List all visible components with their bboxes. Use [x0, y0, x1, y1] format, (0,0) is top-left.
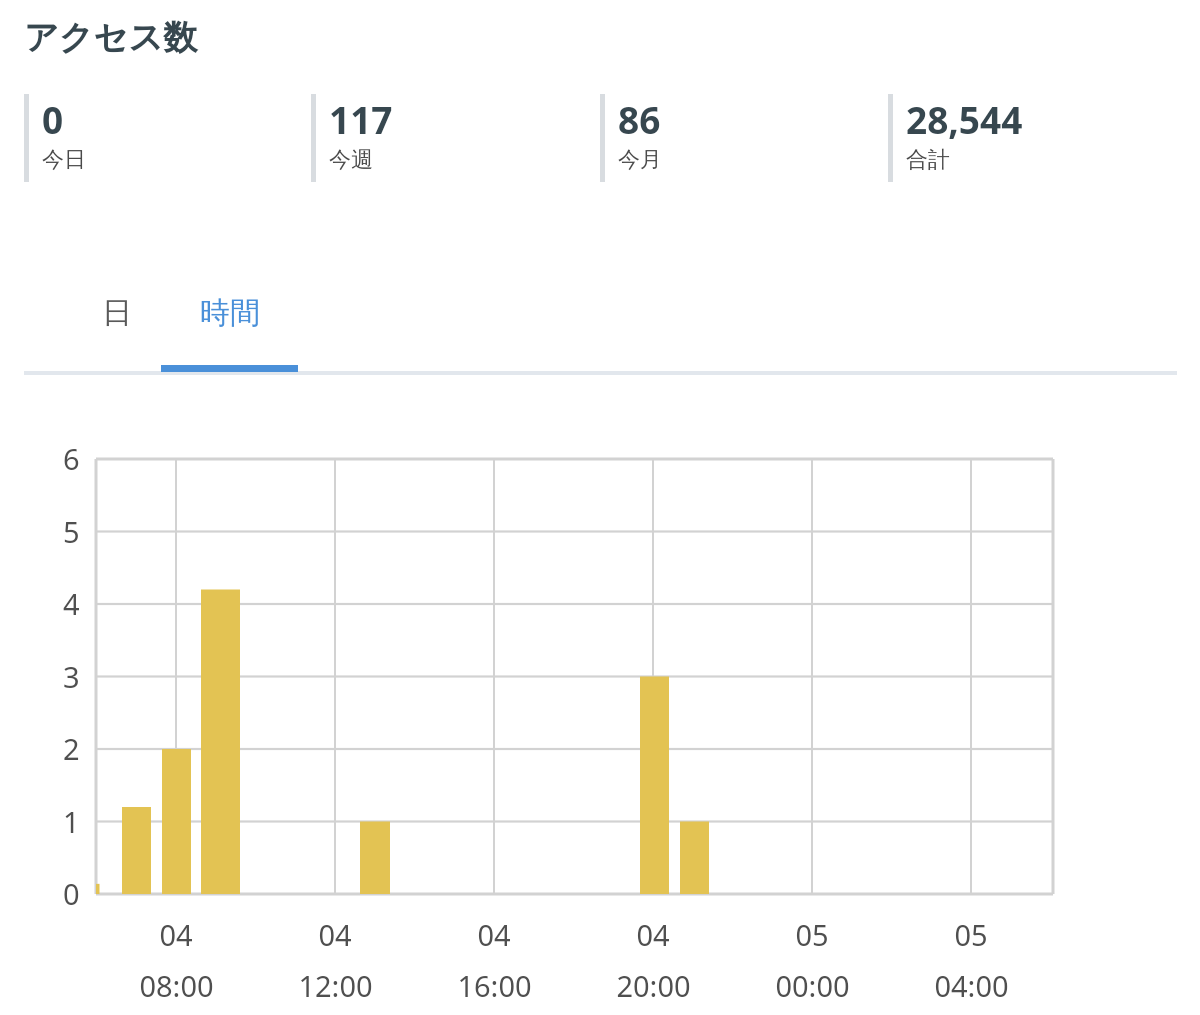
- button[interactable]: 時間: [161, 272, 298, 354]
- staticText: 16:00: [457, 966, 532, 1005]
- staticText: 86: [618, 94, 661, 144]
- button[interactable]: 117: [311, 94, 393, 182]
- staticText: 3: [63, 657, 80, 696]
- staticText: 08:00: [139, 966, 214, 1005]
- staticText: 04:00: [934, 966, 1009, 1005]
- staticText: 6: [63, 439, 80, 478]
- staticText: 12:00: [298, 966, 373, 1005]
- staticText: 5: [63, 512, 80, 551]
- staticText: 4: [63, 584, 80, 623]
- staticText: 04: [318, 915, 352, 954]
- staticText: 日: [102, 294, 132, 332]
- staticText: 合計: [906, 146, 950, 174]
- staticText: 時間: [200, 294, 260, 332]
- button[interactable]: 28,544: [888, 94, 1023, 182]
- staticText: 今月: [618, 146, 662, 174]
- staticText: 04: [159, 915, 193, 954]
- staticText: 20:00: [616, 966, 691, 1005]
- staticText: 0: [42, 94, 64, 144]
- staticText: 0: [63, 874, 80, 913]
- other: アクセス数 時間別グラフ: [96, 459, 1053, 894]
- staticText: 2: [63, 729, 80, 768]
- staticText: 今週: [329, 146, 373, 174]
- button[interactable]: 日: [72, 272, 161, 354]
- staticText: 04: [477, 915, 511, 954]
- staticText: 1: [63, 802, 80, 841]
- staticText: 今日: [42, 146, 86, 174]
- staticText: 04: [636, 915, 670, 954]
- staticText: 28,544: [906, 94, 1023, 144]
- button[interactable]: 0: [24, 94, 86, 182]
- staticText: アクセス数: [24, 16, 198, 59]
- staticText: 00:00: [775, 966, 850, 1005]
- staticText: 05: [795, 915, 829, 954]
- button[interactable]: 86: [600, 94, 662, 182]
- staticText: 117: [329, 94, 393, 144]
- staticText: 05: [954, 915, 988, 954]
